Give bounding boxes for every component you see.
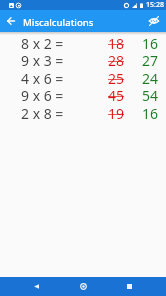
staticText: 25	[108, 69, 125, 87]
staticText: 2 x 8 =	[21, 104, 64, 122]
button[interactable]: Hide answers	[143, 10, 165, 32]
button[interactable]: 4 x 6 =	[0, 69, 166, 87]
staticText: 8 x 2 =	[21, 34, 64, 52]
button[interactable]: 8 x 2 =	[0, 34, 166, 52]
staticText: 16	[142, 34, 159, 52]
staticText: 9 x 6 =	[21, 86, 64, 104]
button[interactable]: Back	[27, 277, 46, 296]
button[interactable]: 9 x 6 =	[0, 86, 166, 104]
staticText: 54	[142, 86, 159, 104]
staticText: 28	[108, 51, 125, 69]
staticText: 19	[108, 104, 125, 122]
button[interactable]: Recent apps	[120, 277, 139, 296]
staticText: 16	[142, 104, 159, 122]
staticText: 24	[142, 69, 159, 87]
staticText: 18	[108, 34, 125, 52]
staticText: 9 x 3 =	[21, 51, 64, 69]
button[interactable]: 2 x 8 =	[0, 104, 166, 122]
button[interactable]: Home	[74, 277, 93, 296]
button[interactable]: Navigate up	[0, 10, 22, 32]
staticText: 15:28	[146, 0, 164, 10]
staticText: 4 x 6 =	[21, 69, 64, 87]
staticText: 27	[142, 51, 159, 69]
button[interactable]: 9 x 3 =	[0, 51, 166, 69]
staticText: 45	[108, 86, 125, 104]
staticText: Miscalculations	[23, 16, 94, 29]
